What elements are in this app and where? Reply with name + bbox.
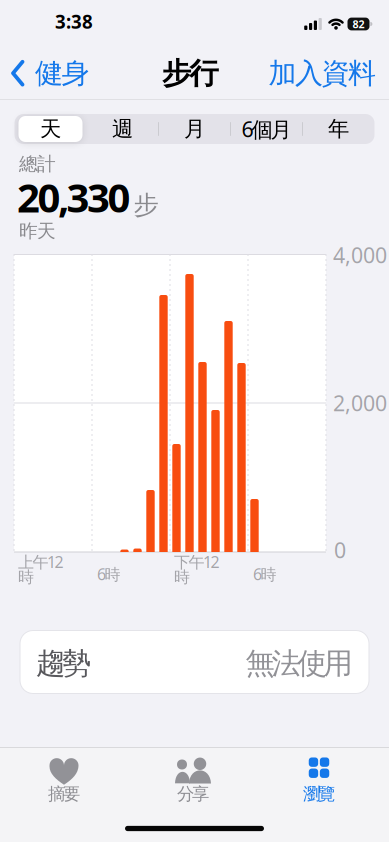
staticText: 步 — [133, 189, 158, 220]
staticText: 82 — [352, 17, 364, 31]
button[interactable]: 年 — [303, 116, 373, 142]
staticText: 6個月 — [241, 115, 291, 143]
button[interactable]: 趨勢 — [19, 630, 369, 694]
button[interactable]: 加入資料 — [268, 56, 389, 91]
staticText: 無法使用 — [245, 645, 352, 681]
staticText: 健身 — [35, 56, 89, 91]
button[interactable]: 週 — [87, 116, 157, 142]
staticText: 6時 — [97, 563, 120, 585]
staticText: 2,000 — [333, 389, 387, 417]
button[interactable]: 健身 — [0, 56, 89, 91]
staticText: 時 — [174, 567, 190, 587]
staticText: 加入資料 — [268, 56, 376, 91]
staticText: 下午12 — [174, 551, 219, 572]
staticText: 0 — [334, 536, 346, 564]
staticText: 昨天 — [19, 219, 56, 242]
button[interactable]: 天 — [15, 116, 85, 142]
staticText: 時 — [18, 567, 34, 587]
staticText: 月 — [184, 116, 205, 142]
staticText: 瀏覽 — [303, 783, 335, 805]
staticText: 週 — [112, 116, 133, 142]
staticText: 步行 — [162, 55, 218, 91]
staticText: 摘要 — [48, 783, 80, 805]
button[interactable]: 6個月 — [231, 116, 301, 142]
button[interactable]: 分享 — [141, 753, 245, 811]
staticText: 天 — [40, 116, 61, 142]
staticText: 3:38 — [55, 9, 93, 34]
button[interactable]: 瀏覽 — [267, 753, 371, 811]
staticText: 4,000 — [333, 241, 387, 269]
staticText: 上午12 — [18, 551, 63, 572]
button[interactable]: 月 — [159, 116, 229, 142]
button[interactable]: 摘要 — [12, 753, 116, 811]
staticText: 分享 — [177, 783, 209, 805]
staticText: 20,330 — [17, 170, 130, 223]
staticText: 趨勢 — [36, 645, 91, 681]
staticText: 年 — [328, 116, 349, 142]
staticText: 6時 — [253, 563, 276, 585]
staticText: 總計 — [19, 152, 56, 175]
